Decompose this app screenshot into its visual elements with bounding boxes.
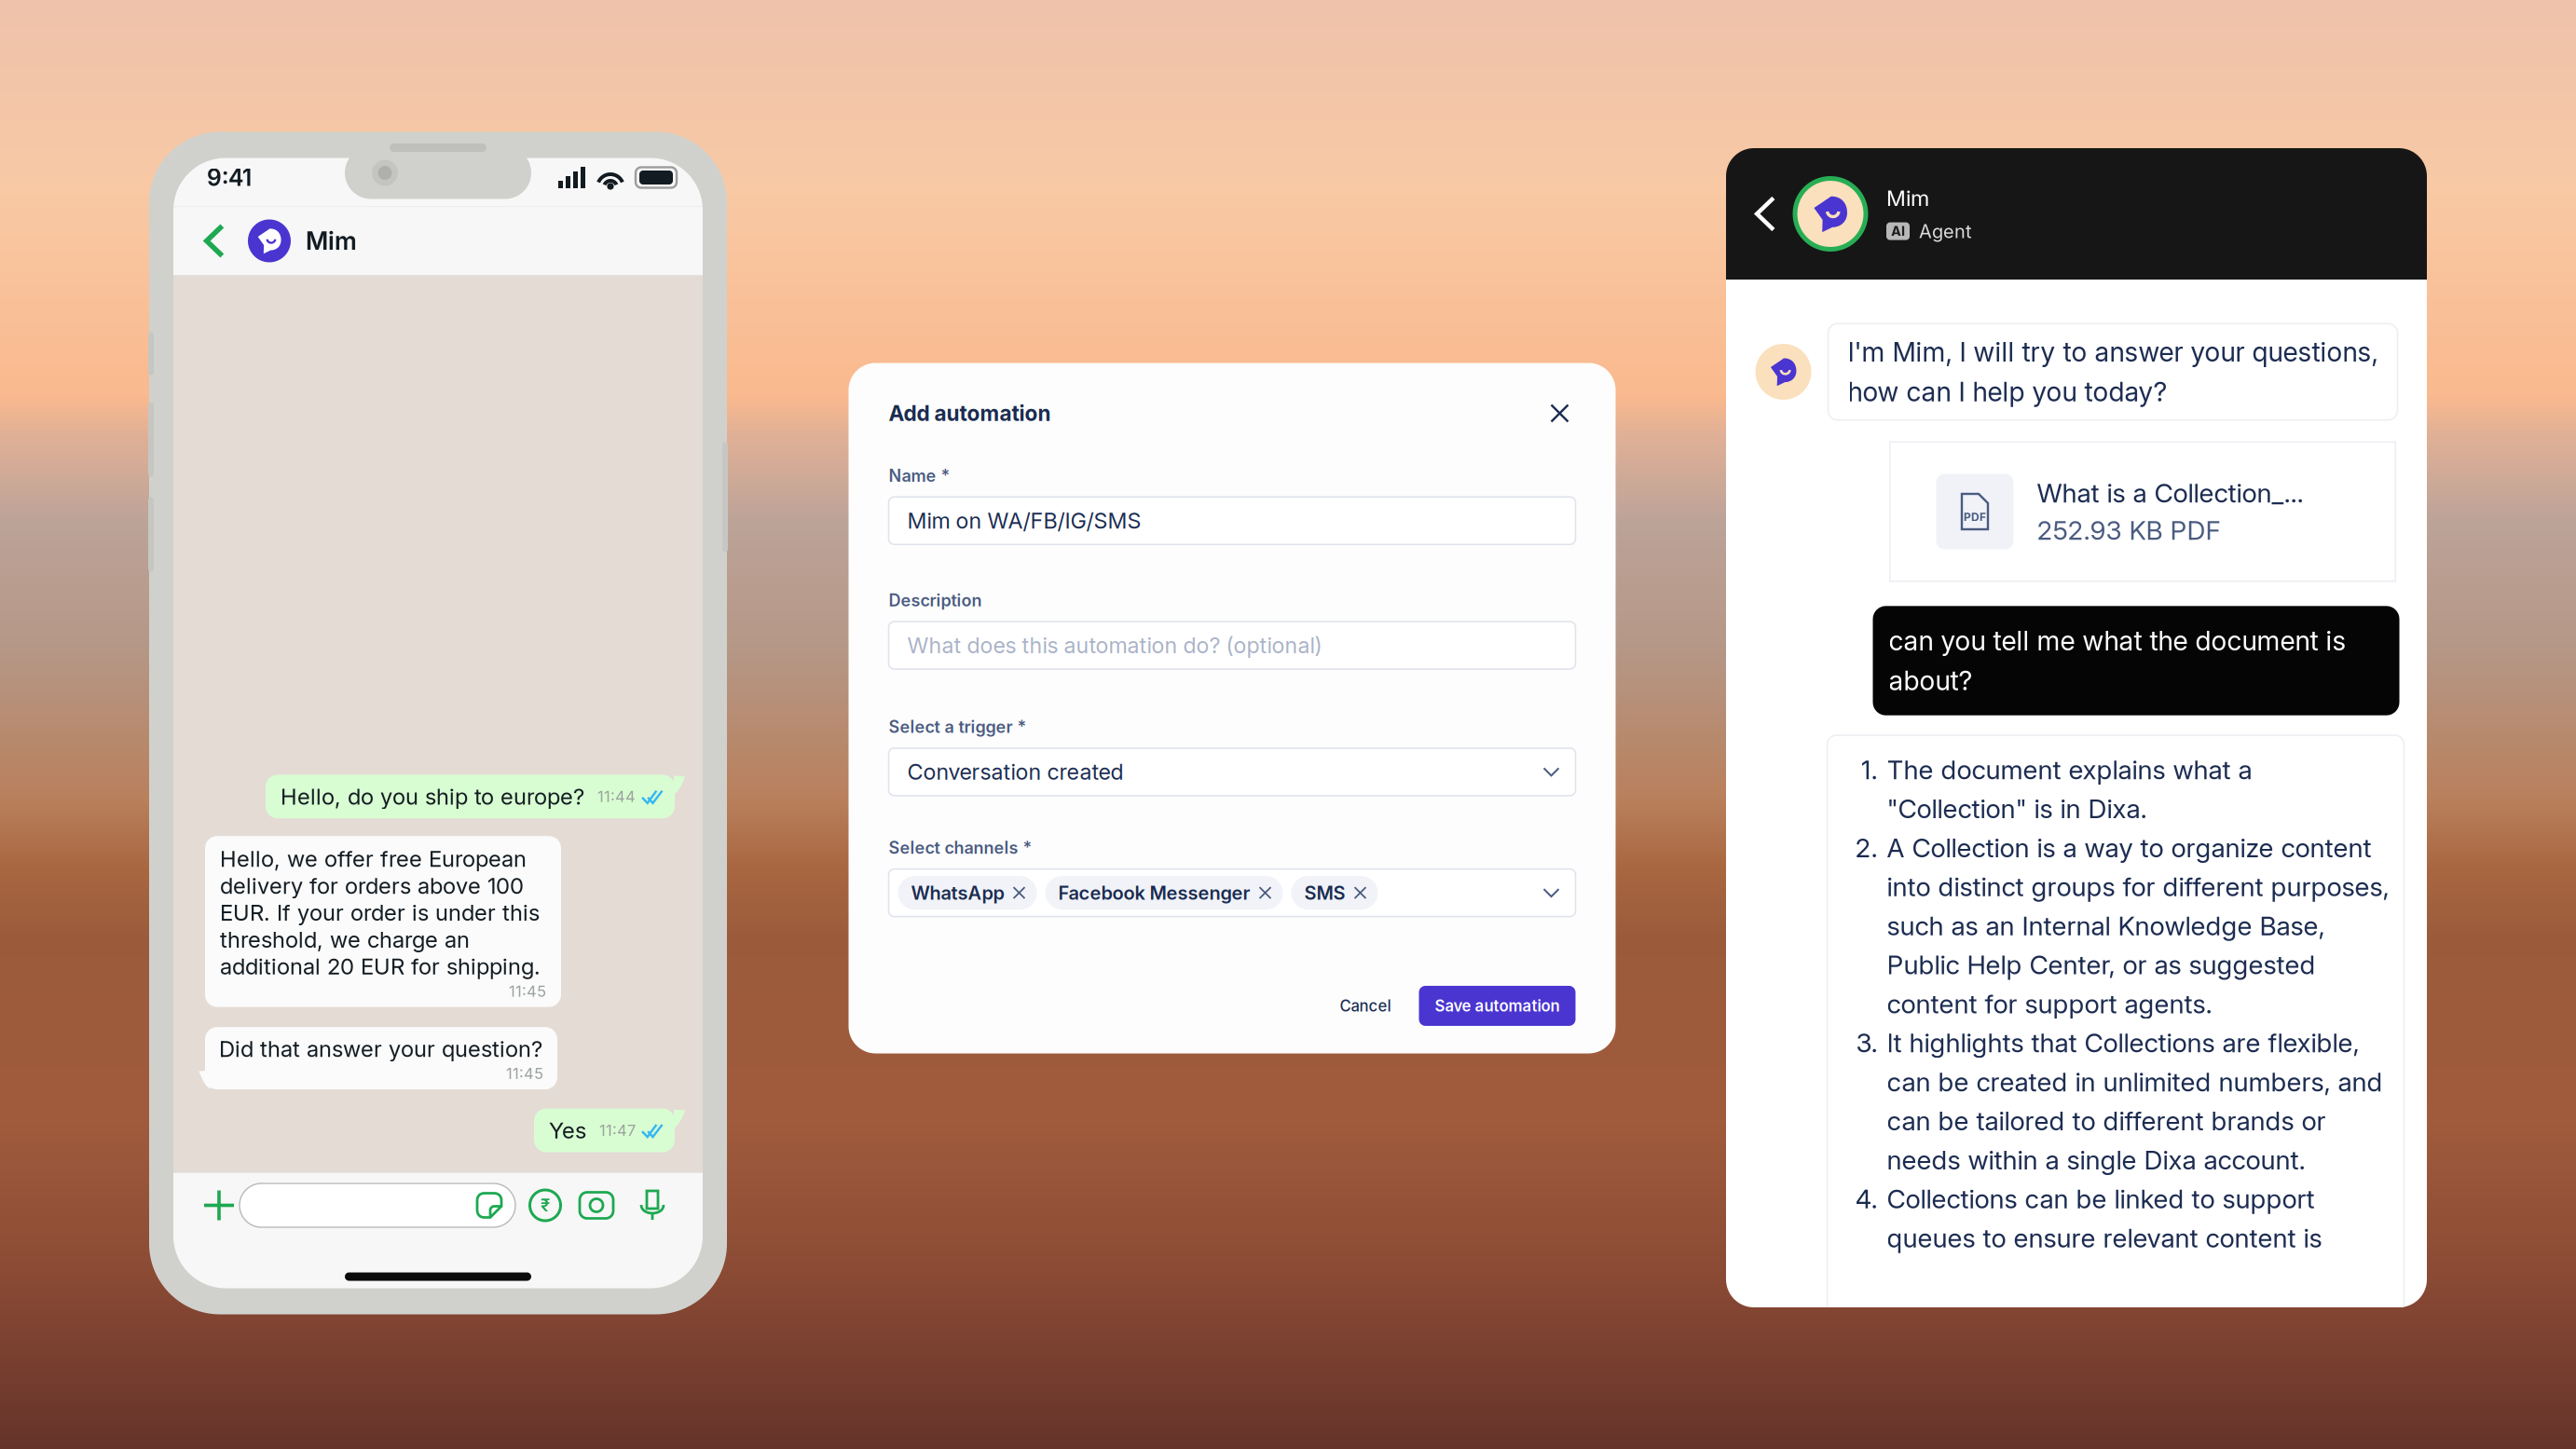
button[interactable]: Voice message <box>625 1183 679 1228</box>
staticText: 11:44 <box>597 787 636 806</box>
button[interactable]: Back <box>1741 188 1789 240</box>
staticText: 11:45 <box>509 982 546 1000</box>
staticText: Name * <box>889 465 950 486</box>
staticText: Hello, do you ship to europe? <box>281 783 584 810</box>
staticText: Select channels * <box>889 838 1032 858</box>
staticText: The document explains what a "Collection… <box>1887 754 2252 824</box>
staticText: I'm Mim, I will try to answer your quest… <box>1848 336 2378 408</box>
staticText: A Collection is a way to organize conten… <box>1887 832 2389 1020</box>
staticText: Did that answer your question? <box>219 1035 542 1062</box>
button[interactable]: Payments <box>523 1183 568 1228</box>
staticText: Mim on WA/FB/IG/SMS <box>907 508 1141 534</box>
button[interactable]: Attach <box>200 1179 238 1231</box>
staticText: 252.93 KB PDF <box>2037 514 2220 546</box>
staticText: Conversation created <box>907 759 1124 785</box>
staticText: It highlights that Collections are flexi… <box>1887 1027 2383 1176</box>
staticText: 3. <box>1856 1027 1877 1059</box>
button[interactable]: Camera <box>568 1183 625 1228</box>
staticText: SMS <box>1304 882 1345 904</box>
staticText: Facebook Messenger <box>1058 882 1250 904</box>
staticText: Description <box>889 590 982 610</box>
staticText: Cancel <box>1340 996 1391 1015</box>
staticText: WhatsApp <box>911 882 1004 904</box>
staticText: 11:47 <box>599 1121 636 1140</box>
button[interactable]: Save automation <box>1419 986 1576 1026</box>
staticText: What does this automation do? (optional) <box>907 632 1322 658</box>
button[interactable]: Back <box>188 213 240 269</box>
staticText: can you tell me what the document is abo… <box>1889 625 2346 697</box>
staticText: Mim <box>306 226 357 256</box>
staticText: ₹ <box>541 1195 550 1216</box>
staticText: AI <box>1891 223 1905 239</box>
staticText: Agent <box>1919 220 1972 242</box>
staticText: What is a Collection_... <box>2037 477 2303 509</box>
staticText: Add automation <box>889 401 1051 426</box>
staticText: Yes <box>549 1117 586 1144</box>
button[interactable]: Cancel <box>1319 983 1411 1028</box>
staticText: 9:41 <box>207 164 252 191</box>
button[interactable]: Close <box>1544 397 1576 429</box>
staticText: 4. <box>1855 1183 1877 1215</box>
staticText: Save automation <box>1435 996 1560 1015</box>
staticText: 11:45 <box>506 1064 543 1083</box>
staticText: PDF <box>1964 510 1986 524</box>
staticText: 1. <box>1861 754 1877 785</box>
staticText: Collections can be linked to support que… <box>1887 1183 2322 1254</box>
staticText: Mim <box>1886 185 1929 212</box>
staticText: 2. <box>1855 832 1877 864</box>
staticText: Hello, we offer free European delivery f… <box>220 845 541 980</box>
staticText: Select a trigger * <box>889 717 1027 737</box>
